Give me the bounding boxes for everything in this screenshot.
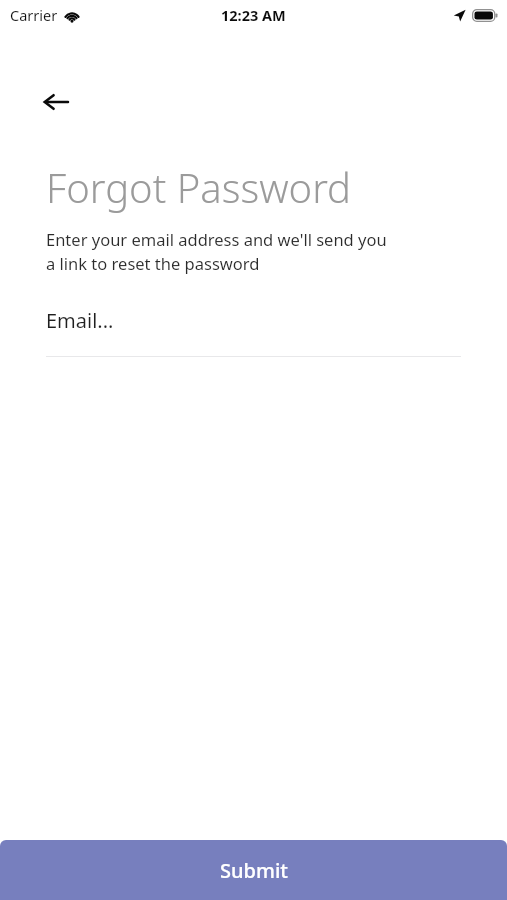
staticText: Carrier (10, 5, 58, 25)
staticText: Email... (46, 307, 114, 334)
button[interactable]: Back (36, 82, 76, 122)
staticText: 12:23 AM (221, 5, 286, 25)
button[interactable]: Email... (0, 307, 507, 357)
staticText: Submit (220, 857, 288, 884)
staticText: Forgot Password (46, 160, 352, 214)
button[interactable]: Submit (0, 840, 507, 900)
staticText: Enter your email address and we'll send … (46, 228, 387, 275)
